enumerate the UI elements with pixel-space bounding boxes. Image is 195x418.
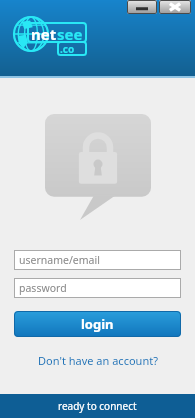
staticText: Don't have an account? [38,353,158,368]
staticText: username/email [19,253,100,267]
staticText: see [57,24,83,44]
staticText: .co [60,42,75,56]
staticText: net [31,24,57,44]
staticText: login [81,315,114,333]
button[interactable]: password [14,278,181,298]
button[interactable]: Don't have an account? [32,351,164,370]
staticText: password [19,281,67,295]
staticText: ready to connect [58,399,137,413]
button[interactable]: login [14,311,181,337]
button[interactable]: username/email [14,250,181,270]
button[interactable]: Minimize [127,0,157,14]
button[interactable]: Close [159,0,191,14]
